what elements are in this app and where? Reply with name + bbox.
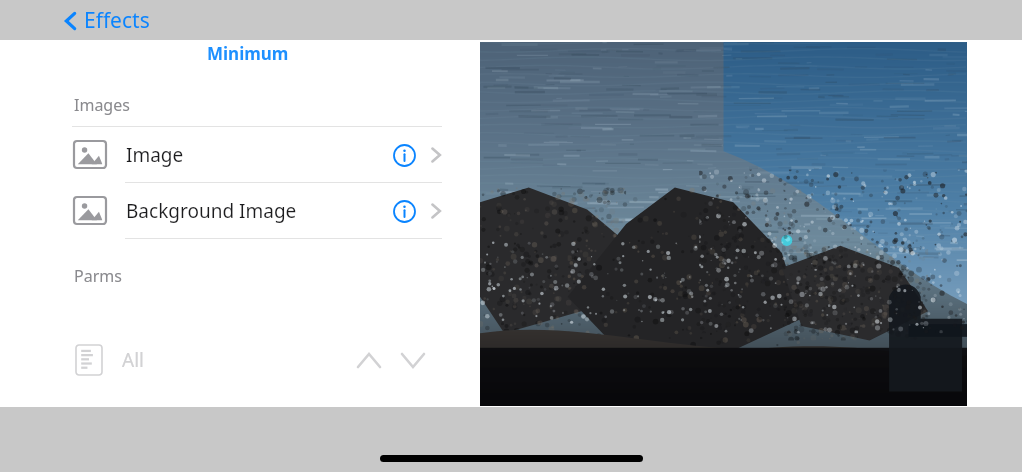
staticText: All — [122, 347, 144, 373]
button[interactable]: Background Image — [0, 183, 1022, 238]
button[interactable]: Info — [388, 195, 420, 227]
button[interactable]: Effects — [58, 2, 156, 39]
button[interactable]: Previous — [350, 341, 388, 379]
staticText: Effects — [84, 6, 150, 35]
button[interactable]: Next — [394, 341, 432, 379]
button[interactable]: Image — [0, 127, 1022, 182]
staticText: Images — [74, 94, 130, 116]
staticText: Background Image — [126, 198, 297, 224]
staticText: Minimum — [207, 42, 289, 65]
button[interactable]: Info — [388, 139, 420, 171]
staticText: Parms — [74, 265, 122, 287]
button[interactable]: All — [0, 339, 1022, 381]
staticText: Image — [126, 142, 184, 168]
